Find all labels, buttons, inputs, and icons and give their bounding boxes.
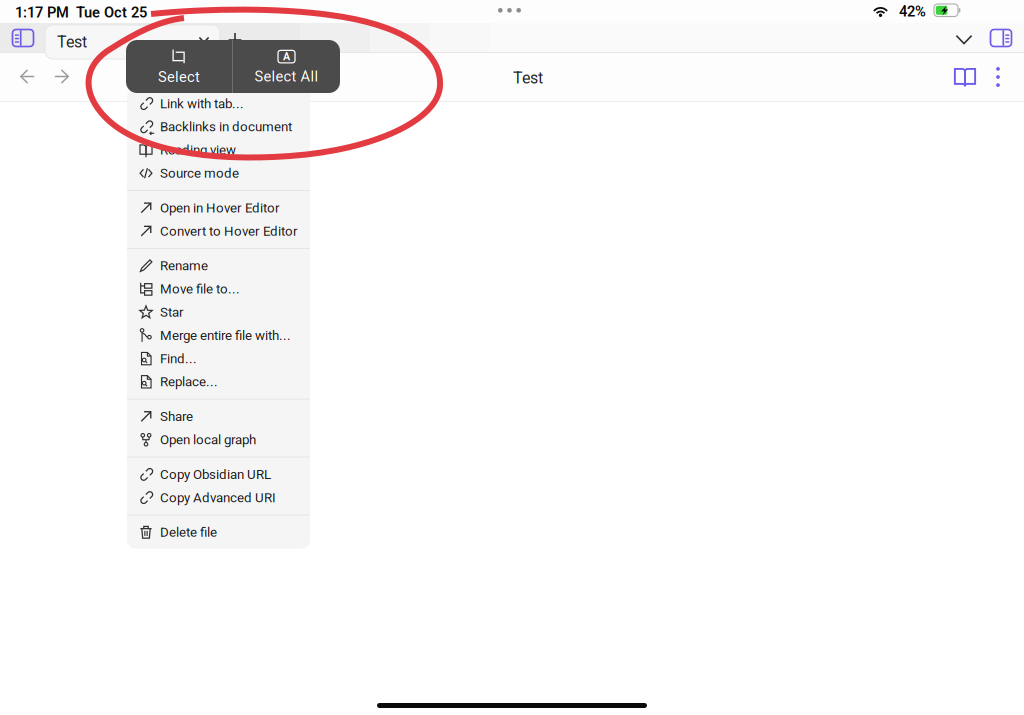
staticText: Convert to Hover Editor — [160, 223, 298, 239]
staticText: 42% — [899, 3, 926, 20]
button[interactable]: Delete file — [127, 521, 310, 544]
button[interactable]: Star — [127, 301, 310, 324]
button[interactable]: A — [233, 40, 340, 93]
button[interactable]: Toggle left sidebar — [12, 29, 34, 47]
staticText: Source mode — [160, 166, 239, 181]
button[interactable]: Source mode — [127, 162, 310, 185]
staticText: Open in Hover Editor — [160, 200, 280, 215]
button[interactable]: Toggle right sidebar — [990, 29, 1012, 47]
staticText: Tue Oct 25 — [76, 4, 147, 21]
button[interactable]: Tab options — [198, 34, 210, 46]
staticText: Share — [160, 409, 193, 424]
staticText: Find... — [160, 351, 197, 366]
staticText: Star — [160, 305, 184, 320]
staticText: A — [283, 50, 290, 63]
button[interactable]: Reading view — [951, 64, 979, 90]
button[interactable]: Find... — [127, 347, 310, 370]
staticText: Move file to... — [160, 281, 240, 297]
button[interactable]: Backlinks in document — [127, 115, 310, 138]
button[interactable]: Share — [127, 405, 310, 428]
staticText: Copy Obsidian URL — [160, 467, 271, 482]
button[interactable]: More options — [988, 64, 1008, 90]
button[interactable]: Merge entire file with... — [127, 324, 310, 347]
button[interactable]: New tab — [228, 32, 242, 48]
button[interactable]: Back — [20, 69, 35, 84]
staticText: Select All — [254, 68, 318, 85]
button[interactable]: Link with tab... — [127, 92, 310, 115]
button[interactable]: Select — [126, 40, 232, 93]
button[interactable]: Open in Hover Editor — [127, 196, 310, 219]
staticText: Link with tab... — [160, 96, 244, 111]
button[interactable]: Open local graph — [127, 428, 310, 451]
staticText: Delete file — [160, 525, 217, 540]
button[interactable]: Replace... — [127, 370, 310, 393]
staticText: Backlinks in document — [160, 119, 292, 134]
staticText: Merge entire file with... — [160, 328, 291, 343]
button[interactable]: Reading view — [127, 138, 310, 162]
button[interactable]: Copy Advanced URI — [127, 486, 310, 509]
staticText: Open local graph — [160, 432, 256, 447]
button[interactable]: Convert to Hover Editor — [127, 219, 310, 243]
button[interactable]: Forward — [54, 69, 69, 84]
staticText: Reading view — [160, 142, 236, 158]
button[interactable]: Collapse — [955, 33, 973, 47]
staticText: 1:17 PM — [15, 4, 69, 21]
staticText: Copy Advanced URI — [160, 490, 276, 505]
staticText: Select — [158, 69, 200, 85]
button[interactable]: Copy Obsidian URL — [127, 463, 310, 486]
staticText: Replace... — [160, 374, 218, 389]
staticText: Rename — [160, 258, 208, 273]
button[interactable]: Move file to... — [127, 277, 310, 301]
staticText: Test — [513, 69, 543, 87]
button[interactable]: Rename — [127, 254, 310, 277]
staticText: Test — [57, 33, 87, 51]
